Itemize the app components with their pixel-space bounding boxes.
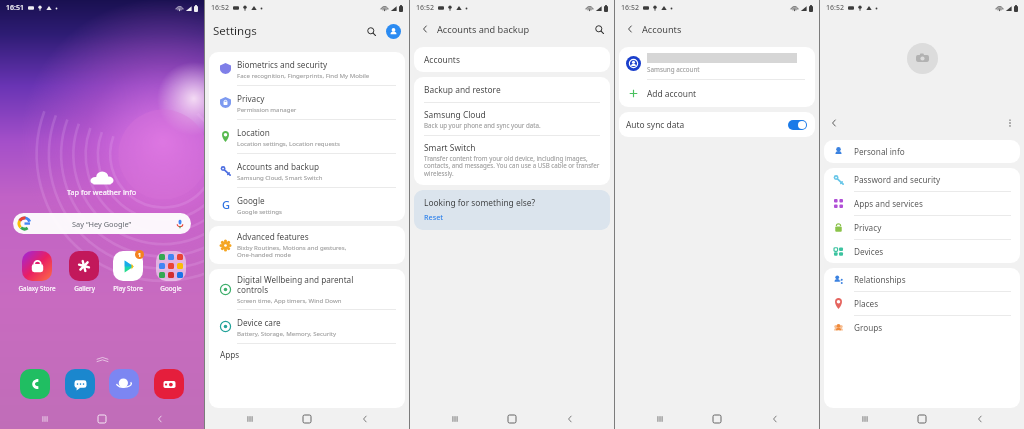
button[interactable]: Back: [557, 408, 583, 429]
button[interactable]: Backup and restore: [414, 77, 610, 102]
staticText: G: [222, 197, 230, 212]
button[interactable]: Navigate up: [622, 21, 638, 37]
button[interactable]: Recents: [237, 408, 263, 429]
button[interactable]: Personal info: [824, 140, 1020, 163]
button[interactable]: Say “Hey Google”: [13, 213, 191, 234]
button[interactable]: Advanced features: [209, 226, 405, 264]
staticText: Groups: [854, 322, 883, 333]
staticText: Accounts and backup: [237, 161, 320, 172]
staticText: Devices: [854, 246, 884, 257]
button[interactable]: Auto sync data: [619, 112, 815, 137]
staticText: Places: [854, 298, 879, 309]
button[interactable]: Digital Wellbeing and parental controls: [209, 269, 405, 310]
button[interactable]: Back: [826, 115, 842, 131]
button[interactable]: Camera: [154, 369, 184, 399]
button[interactable]: Relationships: [824, 268, 1020, 292]
staticText: Accounts and backup: [437, 23, 530, 36]
staticText: Bixby Routines, Motions and gestures, On…: [237, 243, 347, 259]
staticText: Tap for weather info: [67, 187, 137, 197]
button[interactable]: Devices: [824, 240, 1020, 263]
staticText: Settings: [213, 23, 257, 39]
button[interactable]: Biometrics and security: [209, 52, 405, 86]
staticText: Looking for something else?: [424, 197, 536, 208]
staticText: Smart Switch: [424, 142, 476, 153]
button[interactable]: Navigate up: [417, 21, 433, 37]
button[interactable]: Galaxy Store: [16, 251, 58, 293]
staticText: Gallery: [74, 284, 95, 293]
staticText: Privacy: [854, 222, 882, 233]
staticText: Transfer content from your old device, i…: [424, 154, 600, 178]
staticText: 16:52: [826, 3, 844, 13]
button[interactable]: Add account: [619, 80, 815, 107]
button[interactable]: More options: [1002, 115, 1018, 131]
button[interactable]: Apps and services: [824, 192, 1020, 216]
button[interactable]: Home: [499, 408, 525, 429]
button[interactable]: Messages: [65, 369, 95, 399]
staticText: Privacy: [237, 93, 265, 104]
button[interactable]: Groups: [824, 316, 1020, 339]
staticText: Accounts: [642, 23, 682, 36]
staticText: Relationships: [854, 274, 906, 285]
staticText: Advanced features: [237, 231, 309, 242]
button[interactable]: Back: [147, 408, 173, 429]
button[interactable]: Places: [824, 292, 1020, 316]
staticText: Back up your phone and sync your data.: [424, 121, 541, 129]
button[interactable]: Privacy: [209, 86, 405, 120]
button[interactable]: Looking for something else?: [414, 190, 610, 230]
button[interactable]: Back: [967, 408, 993, 429]
staticText: Digital Wellbeing and parental controls: [237, 274, 354, 295]
button[interactable]: Search: [362, 22, 380, 40]
button[interactable]: Accounts: [414, 47, 610, 72]
staticText: Samsung Cloud, Smart Switch: [237, 173, 323, 181]
button[interactable]: Smart Switch: [414, 136, 610, 185]
button[interactable]: Search: [591, 21, 607, 37]
button[interactable]: Home: [89, 408, 115, 429]
button[interactable]: Back: [352, 408, 378, 429]
button[interactable]: G: [209, 188, 405, 221]
button[interactable]: Home: [909, 408, 935, 429]
button[interactable]: Tap for weather info: [59, 170, 145, 197]
staticText: 16:52: [416, 3, 434, 13]
button[interactable]: Account: [386, 24, 401, 39]
button[interactable]: Apps: [209, 344, 405, 374]
button[interactable]: Privacy: [824, 216, 1020, 240]
staticText: Play Store: [113, 284, 143, 293]
staticText: 16:52: [621, 3, 639, 13]
button[interactable]: Phone: [20, 369, 50, 399]
button[interactable]: Location: [209, 120, 405, 154]
staticText: Face recognition, Fingerprints, Find My …: [237, 71, 370, 79]
button[interactable]: Password and security: [824, 168, 1020, 192]
staticText: Battery, Storage, Memory, Security: [237, 329, 337, 337]
staticText: Location settings, Location requests: [237, 139, 340, 147]
staticText: 16:51: [6, 3, 24, 13]
button[interactable]: Recents: [442, 408, 468, 429]
button[interactable]: Change profile photo: [907, 43, 938, 74]
button[interactable]: Home: [704, 408, 730, 429]
staticText: Password and security: [854, 174, 941, 185]
button[interactable]: Google: [154, 251, 188, 293]
staticText: Location: [237, 127, 270, 138]
staticText: Biometrics and security: [237, 59, 328, 70]
button[interactable]: Accounts and backup: [209, 154, 405, 188]
button[interactable]: Home: [294, 408, 320, 429]
button[interactable]: Recents: [32, 408, 58, 429]
staticText: Say “Hey Google”: [72, 219, 132, 229]
staticText: Samsung account: [647, 65, 700, 74]
button[interactable]: Recents: [852, 408, 878, 429]
staticText: Apps: [220, 349, 240, 360]
staticText: Screen time, App timers, Wind Down: [237, 296, 342, 304]
button[interactable]: Recents: [647, 408, 673, 429]
button[interactable]: Samsung account: [619, 47, 815, 79]
staticText: Galaxy Store: [18, 284, 56, 293]
button[interactable]: Back: [762, 408, 788, 429]
button[interactable]: Device care: [209, 310, 405, 344]
staticText: Add account: [647, 88, 697, 99]
button[interactable]: Samsung Cloud: [414, 103, 610, 135]
staticText: Accounts: [424, 54, 460, 65]
staticText: Reset: [424, 212, 444, 222]
button[interactable]: Gallery: [67, 251, 101, 293]
button[interactable]: Internet: [109, 369, 139, 399]
staticText: Samsung Cloud: [424, 109, 486, 120]
button[interactable]: 1: [111, 251, 145, 293]
staticText: Google: [160, 284, 182, 293]
